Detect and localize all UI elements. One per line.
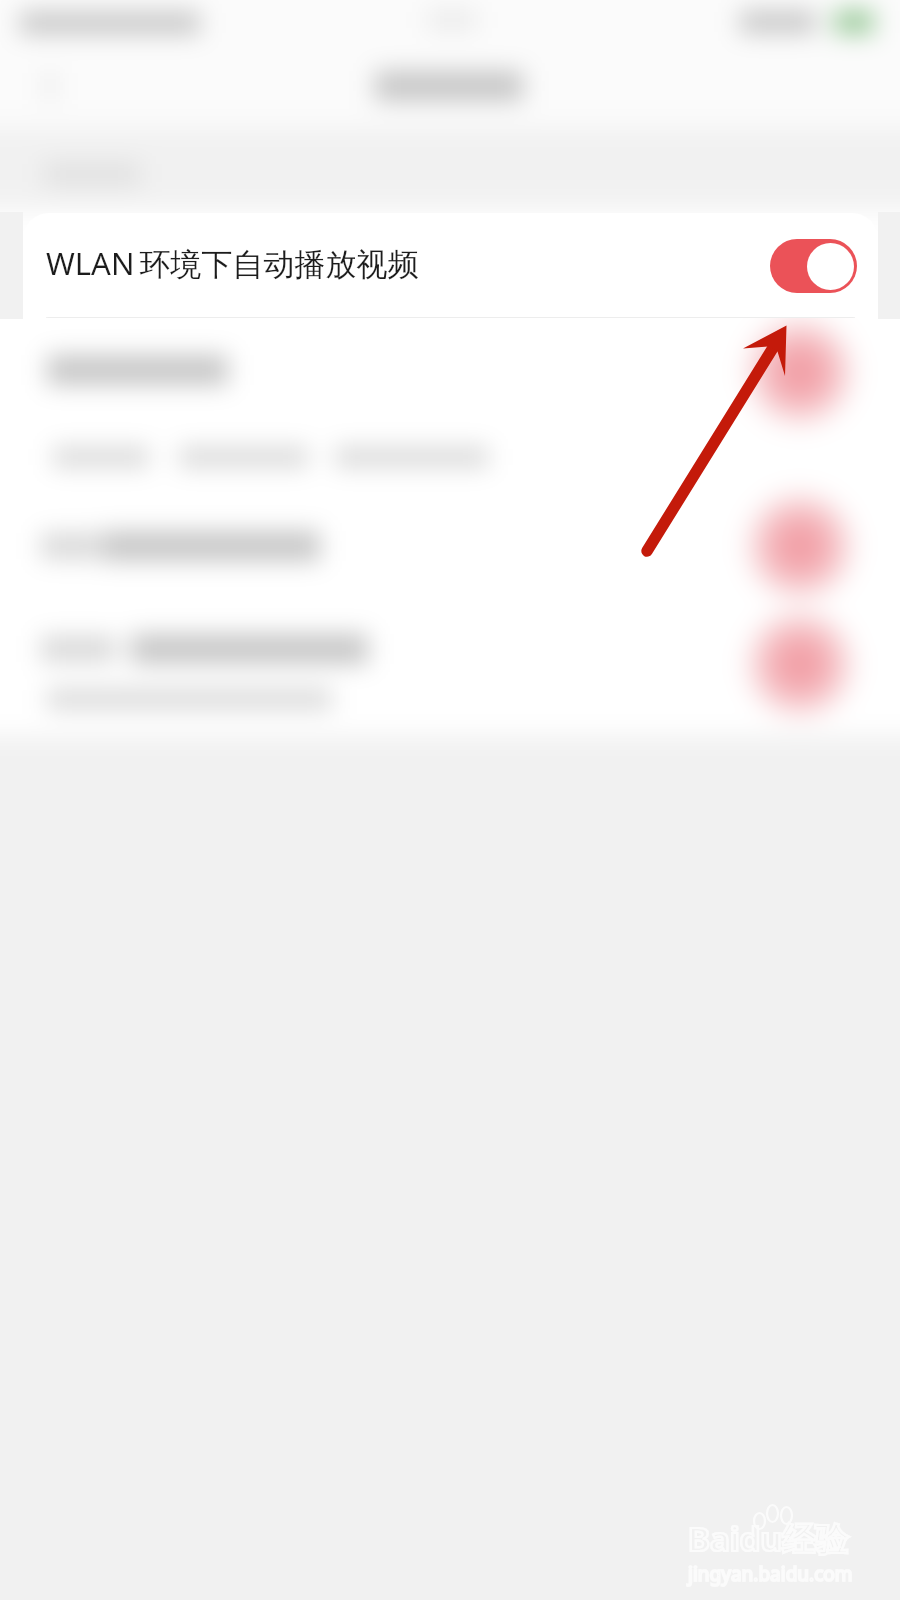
staticText: WLAN 环境下自动播放视频 [46, 242, 419, 284]
staticText: Baidu经验 [688, 1516, 848, 1561]
button[interactable]: WLAN环境下自动播放视频 开关 [770, 239, 857, 293]
staticText: jingyan.baidu.com [688, 1561, 853, 1587]
button[interactable]: WLAN 环境下自动播放视频 [23, 213, 878, 318]
